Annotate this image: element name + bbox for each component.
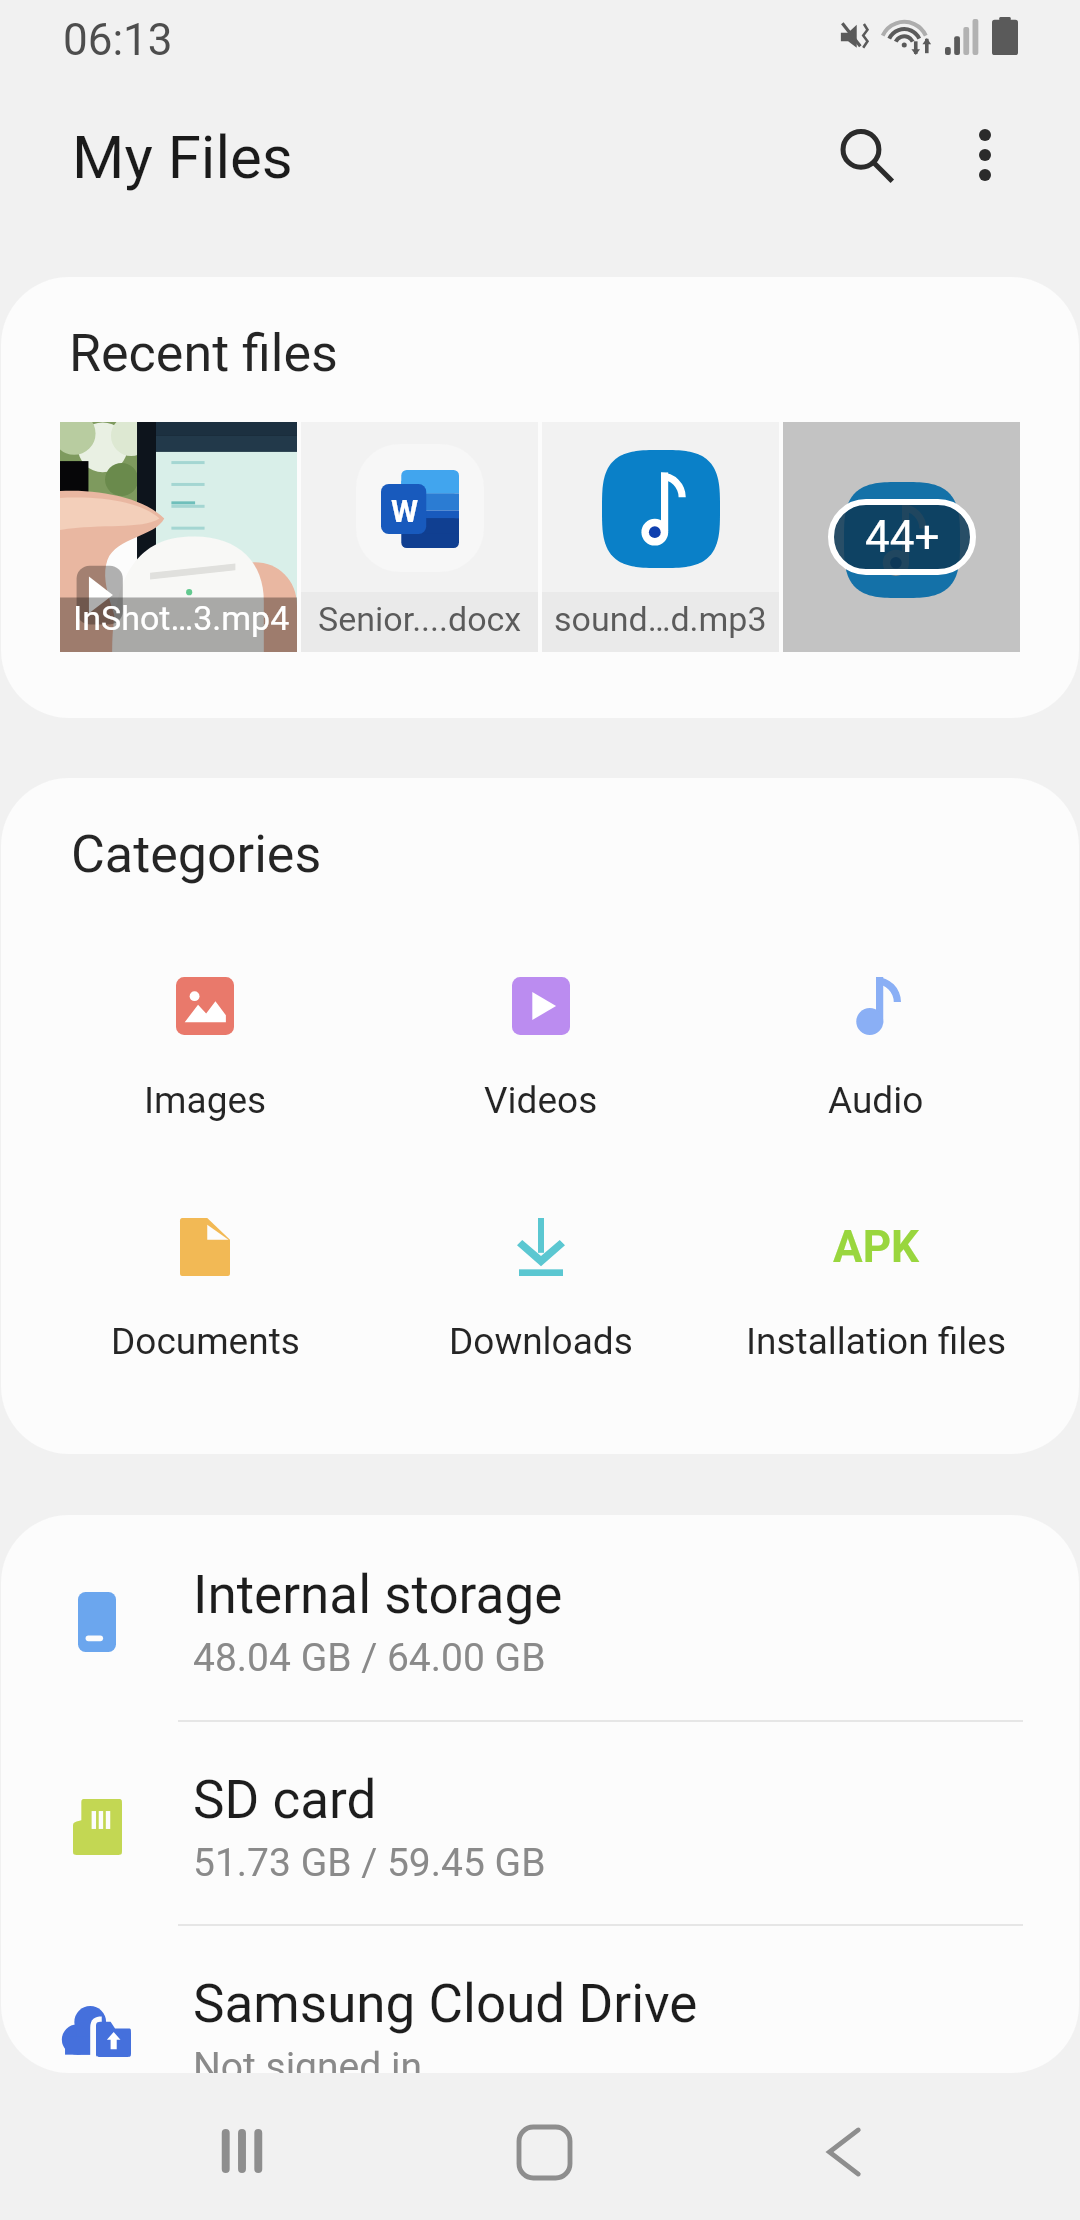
button[interactable]: Internal storage — [1, 1520, 1079, 1724]
button[interactable]: Back — [788, 2097, 898, 2207]
staticText: APK — [833, 1221, 919, 1273]
staticText: Images — [144, 1079, 267, 1122]
button[interactable]: Samsung Cloud Drive — [1, 1929, 1079, 2073]
button[interactable]: Home — [489, 2097, 599, 2207]
staticText: Recent files — [69, 323, 338, 384]
staticText: 06:13 — [63, 14, 173, 66]
button[interactable]: Documents — [37, 1218, 373, 1363]
staticText: Documents — [111, 1320, 300, 1363]
staticText: Senior....docx — [318, 599, 522, 639]
button[interactable]: SD card — [1, 1725, 1079, 1929]
staticText: Not signed in — [193, 2044, 422, 2073]
staticText: Installation files — [746, 1320, 1006, 1363]
staticText: 48.04 GB / 64.00 GB — [193, 1635, 546, 1681]
staticText: Audio — [828, 1079, 924, 1122]
button[interactable]: More options — [930, 100, 1040, 210]
button[interactable]: Audio — [708, 977, 1043, 1122]
staticText: 51.73 GB / 59.45 GB — [193, 1840, 546, 1886]
button[interactable]: Videos — [373, 977, 708, 1122]
button[interactable]: Recent apps — [187, 2096, 297, 2206]
button[interactable]: Senior document file — [301, 422, 538, 652]
button[interactable]: APK — [708, 1218, 1043, 1363]
button[interactable]: Images — [37, 977, 373, 1122]
staticText: SD card — [193, 1769, 377, 1831]
staticText: W — [391, 493, 419, 529]
staticText: sound…d.mp3 — [554, 599, 767, 639]
staticText: Videos — [484, 1079, 598, 1122]
button[interactable]: InShot video file — [60, 422, 297, 652]
button[interactable]: sound mp3 file — [542, 422, 779, 652]
staticText: Samsung Cloud Drive — [193, 1973, 698, 2035]
button[interactable]: Downloads — [373, 1218, 708, 1363]
staticText: InShot…3.mp4 — [73, 598, 290, 638]
staticText: 44+ — [865, 511, 940, 563]
staticText: Categories — [71, 824, 322, 885]
staticText: Internal storage — [193, 1564, 563, 1626]
button[interactable]: Search — [811, 100, 921, 210]
button[interactable]: 44 more files — [783, 422, 1020, 652]
staticText: My Files — [72, 122, 293, 192]
staticText: Downloads — [449, 1320, 633, 1363]
